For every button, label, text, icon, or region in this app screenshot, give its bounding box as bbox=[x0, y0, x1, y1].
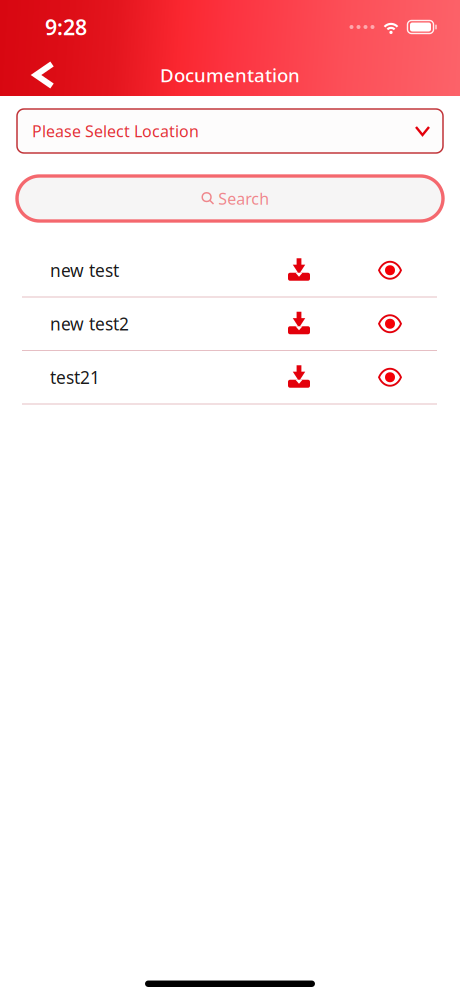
button[interactable]: View test21 bbox=[364, 351, 416, 403]
staticText: test21 bbox=[50, 366, 100, 389]
staticText: Search bbox=[218, 188, 269, 209]
button[interactable]: Please Select Location bbox=[0, 109, 460, 153]
staticText: Documentation bbox=[160, 63, 300, 87]
staticText: 9:28 bbox=[45, 13, 87, 41]
staticText: Please Select Location bbox=[32, 120, 199, 142]
staticText: new test bbox=[50, 259, 119, 282]
button[interactable]: Download new test2 bbox=[273, 298, 325, 350]
button[interactable]: Search bbox=[0, 176, 460, 221]
staticText: new test2 bbox=[50, 312, 129, 335]
button[interactable]: Back bbox=[0, 55, 70, 95]
button[interactable]: Download test21 bbox=[273, 351, 325, 403]
button[interactable]: Download new test bbox=[273, 244, 325, 296]
button[interactable]: View new test2 bbox=[364, 298, 416, 350]
button[interactable]: View new test bbox=[364, 244, 416, 296]
